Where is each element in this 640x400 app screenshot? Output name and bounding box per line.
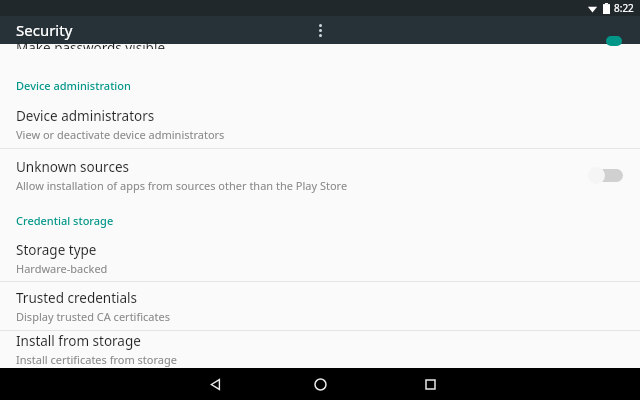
button[interactable]: Recent apps xyxy=(414,368,446,400)
staticText: Hardware-backed xyxy=(16,261,108,276)
button[interactable]: Install from storage xyxy=(0,331,640,368)
staticText: Credential storage xyxy=(16,213,114,228)
staticText: Device administration xyxy=(16,78,131,93)
staticText: Make passwords visible xyxy=(16,39,166,49)
staticText: Display trusted CA certificates xyxy=(16,309,170,324)
button[interactable]: Back xyxy=(199,368,231,400)
staticText: Unknown sources xyxy=(16,158,129,176)
staticText: Install from storage xyxy=(16,332,141,350)
staticText: Allow installation of apps from sources … xyxy=(16,178,348,193)
button[interactable]: More options xyxy=(0,16,640,44)
staticText: Device administrators xyxy=(16,107,155,125)
staticText: 8:22 xyxy=(614,1,634,15)
button[interactable]: Make passwords visible xyxy=(0,44,640,54)
staticText: Install certificates from storage xyxy=(16,352,177,367)
button[interactable]: Home xyxy=(304,368,336,400)
staticText: Storage type xyxy=(16,241,97,259)
button[interactable]: Unknown sources xyxy=(0,149,640,201)
button[interactable]: Trusted credentials xyxy=(0,282,640,330)
button[interactable]: Storage type xyxy=(0,235,640,281)
button[interactable]: Device administrators xyxy=(0,100,640,148)
staticText: View or deactivate device administrators xyxy=(16,127,225,142)
staticText: Trusted credentials xyxy=(16,289,138,307)
staticText: Security xyxy=(16,20,73,40)
button[interactable]: Unknown sources toggle xyxy=(588,163,624,187)
